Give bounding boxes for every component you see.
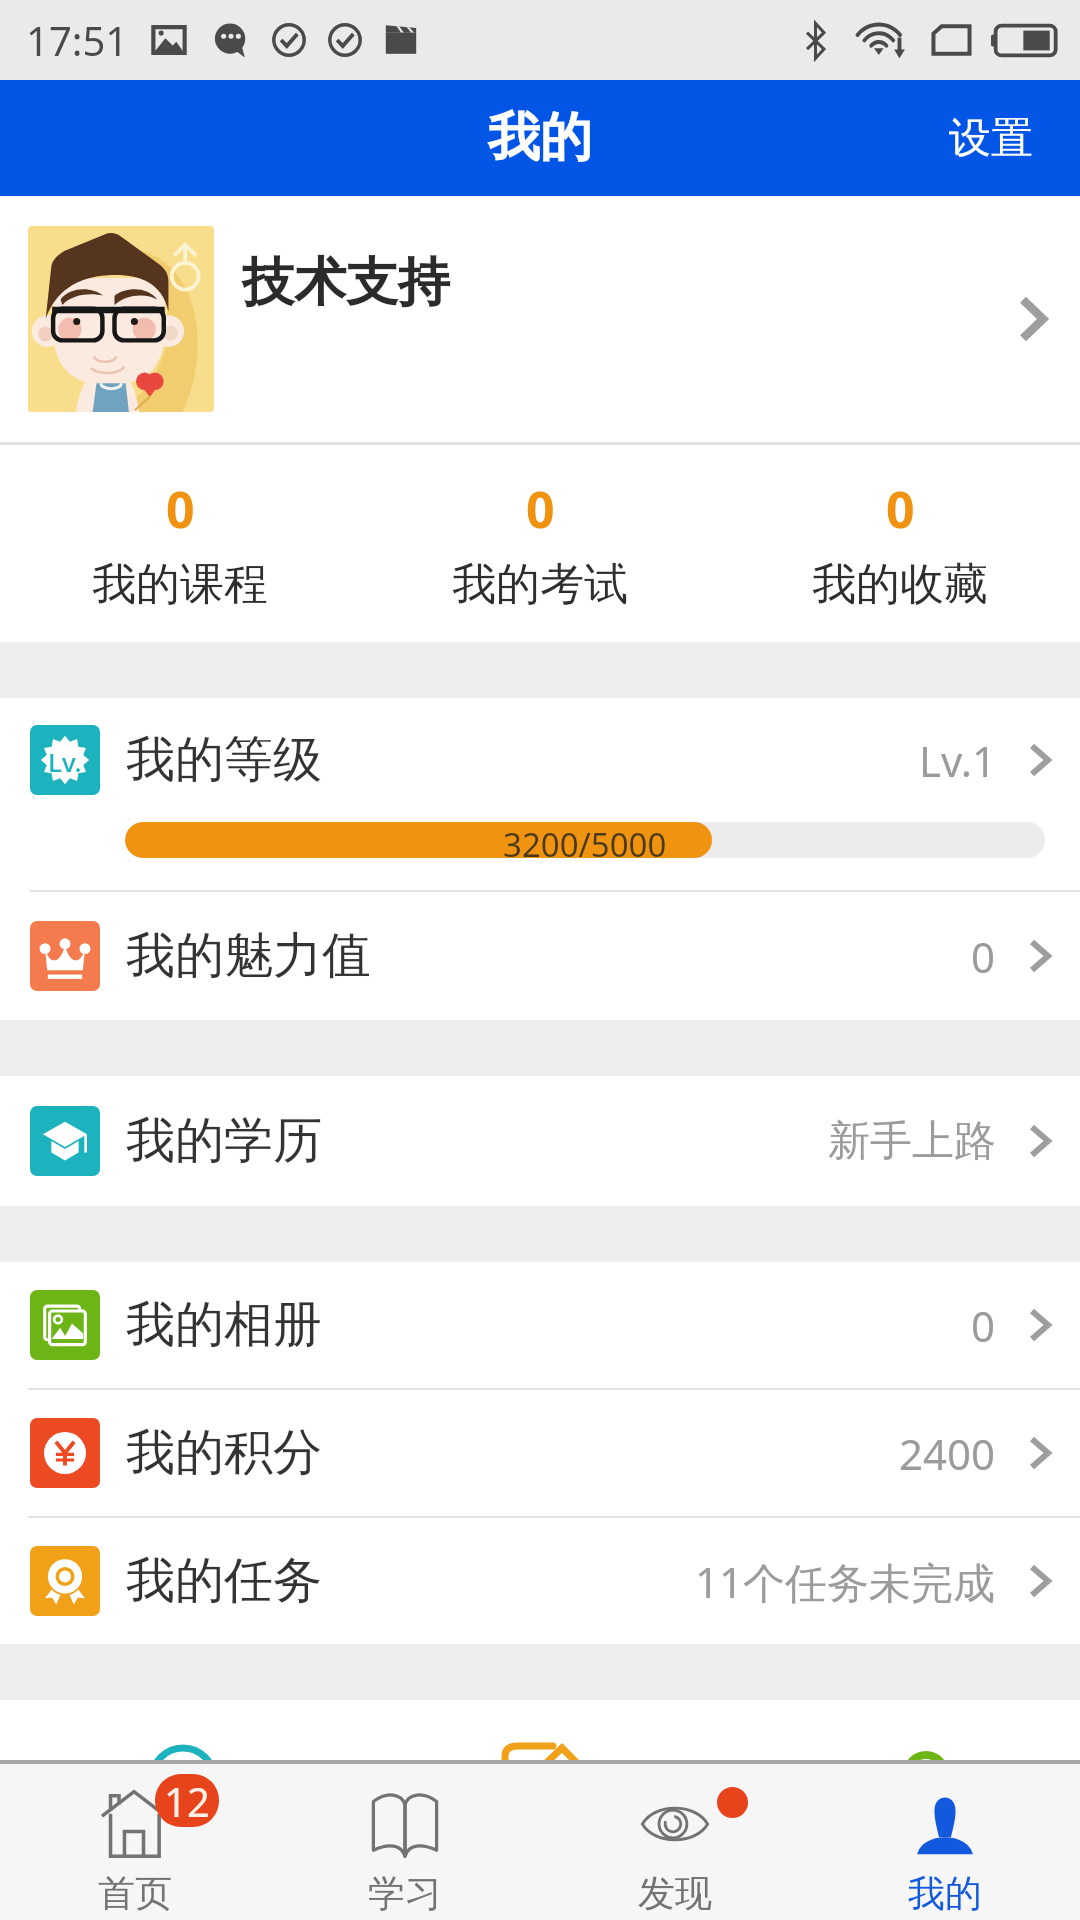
staticText: 技术支持: [242, 250, 450, 316]
staticText: 我的课程: [92, 557, 268, 612]
button[interactable]: Lv.: [0, 698, 1080, 892]
staticText: 0: [971, 928, 996, 985]
button[interactable]: 设置: [902, 80, 1080, 196]
button[interactable]: 我的魅力值: [0, 892, 1080, 1020]
staticText: 设置: [949, 112, 1033, 165]
staticText: Lv.1: [919, 732, 996, 789]
staticText: 我的学历: [126, 1110, 322, 1172]
staticText: 我的相册: [126, 1294, 322, 1356]
staticText: 发现: [638, 1870, 712, 1917]
staticText: 2400: [899, 1425, 996, 1482]
staticText: 我的: [488, 105, 592, 171]
staticText: 我的: [908, 1870, 982, 1917]
staticText: 新手上路: [828, 1115, 996, 1168]
button[interactable]: 12: [0, 1764, 270, 1920]
staticText: 我的收藏: [812, 557, 988, 612]
staticText: 首页: [98, 1870, 172, 1917]
staticText: 0: [886, 475, 915, 543]
staticText: 我的考试: [452, 557, 628, 612]
staticText: 我的等级: [126, 729, 322, 791]
staticText: 12: [164, 1774, 210, 1827]
staticText: Lv.: [48, 744, 82, 779]
staticText: 我的任务: [126, 1550, 322, 1612]
staticText: 0: [971, 1297, 996, 1354]
button[interactable]: 0: [720, 445, 1080, 642]
staticText: 我的积分: [126, 1422, 322, 1484]
staticText: 0: [166, 475, 195, 543]
staticText: 0: [526, 475, 555, 543]
button[interactable]: 我的相册: [0, 1262, 1080, 1388]
button[interactable]: 0: [0, 445, 360, 642]
button[interactable]: 我的学历: [0, 1076, 1080, 1206]
staticText: 17:51: [26, 13, 129, 67]
staticText: 11个任务未完成: [695, 1553, 996, 1610]
staticText: 学习: [368, 1870, 442, 1917]
button[interactable]: 0: [360, 445, 720, 642]
staticText: 我的魅力值: [126, 925, 371, 987]
button[interactable]: 我的: [810, 1764, 1080, 1920]
button[interactable]: 我的积分: [0, 1390, 1080, 1516]
button[interactable]: 我的任务: [0, 1518, 1080, 1644]
staticText: 3200/5000: [503, 822, 667, 858]
button[interactable]: 发现: [540, 1764, 810, 1920]
button[interactable]: 学习: [270, 1764, 540, 1920]
button[interactable]: 技术支持: [0, 196, 1080, 442]
